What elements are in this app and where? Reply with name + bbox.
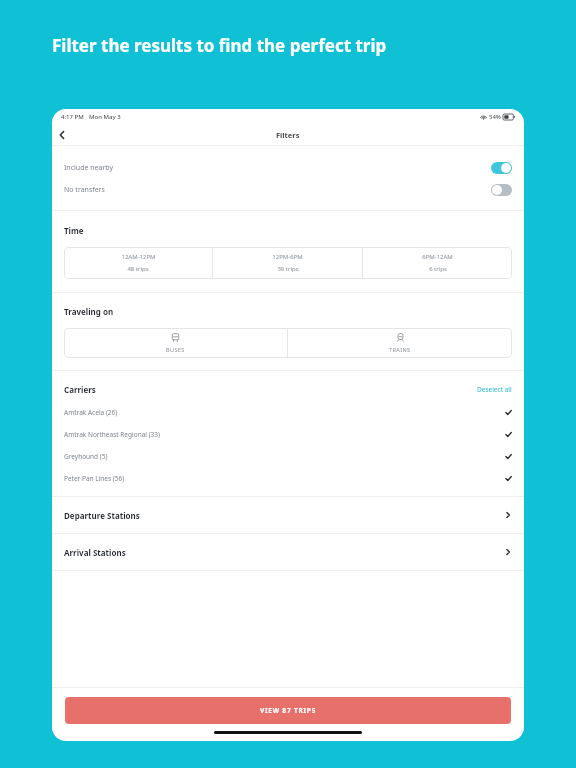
staticText: Time bbox=[64, 225, 512, 236]
button[interactable]: 12PM-6PM bbox=[213, 247, 362, 279]
staticText: Deselect all bbox=[477, 385, 512, 394]
button[interactable]: Arrival Stations bbox=[52, 534, 524, 570]
staticText: Filters bbox=[276, 130, 300, 140]
button[interactable]: 6PM-12AM bbox=[363, 247, 512, 279]
staticText: 48 trips bbox=[127, 265, 149, 273]
staticText: BUSES bbox=[166, 346, 185, 353]
staticText: VIEW 87 TRIPS bbox=[260, 706, 317, 715]
button[interactable]: TRAINS bbox=[288, 328, 512, 358]
staticText: No transfers bbox=[64, 185, 491, 195]
staticText: Arrival Stations bbox=[64, 547, 504, 558]
staticText: Mon May 3 bbox=[89, 113, 121, 121]
button[interactable]: Peter Pan Lines (56) bbox=[52, 467, 524, 489]
staticText: TRAINS bbox=[389, 346, 411, 353]
button[interactable]: BUSES bbox=[64, 328, 287, 358]
staticText: 4:17 PM bbox=[61, 113, 84, 121]
button[interactable]: No transfers bbox=[52, 179, 524, 201]
staticText: 6PM-12AM bbox=[422, 253, 453, 261]
staticText: Peter Pan Lines (56) bbox=[64, 474, 505, 483]
staticText: Greyhound (5) bbox=[64, 452, 505, 461]
staticText: Amtrak Northeast Regional (33) bbox=[64, 430, 505, 439]
staticText: Filter the results to find the perfect t… bbox=[52, 34, 387, 57]
staticText: Include nearby bbox=[64, 163, 491, 173]
staticText: Carriers bbox=[64, 384, 477, 395]
button[interactable]: Back bbox=[52, 125, 72, 145]
staticText: Traveling on bbox=[64, 306, 512, 317]
button[interactable]: Deselect all bbox=[477, 385, 512, 394]
staticText: Amtrak Acela (26) bbox=[64, 408, 505, 417]
staticText: 12PM-6PM bbox=[272, 253, 303, 261]
button[interactable]: Include nearby bbox=[52, 157, 524, 179]
button[interactable]: Departure Stations bbox=[52, 497, 524, 533]
staticText: 6 trips bbox=[429, 265, 447, 273]
button[interactable]: Amtrak Acela (26) bbox=[52, 401, 524, 423]
button[interactable]: Amtrak Northeast Regional (33) bbox=[52, 423, 524, 445]
staticText: 54% bbox=[489, 113, 501, 121]
staticText: 12AM-12PM bbox=[121, 253, 156, 261]
button[interactable]: 12AM-12PM bbox=[64, 247, 212, 279]
button[interactable]: VIEW 87 TRIPS bbox=[65, 697, 511, 724]
staticText: Departure Stations bbox=[64, 510, 504, 521]
button[interactable]: Greyhound (5) bbox=[52, 445, 524, 467]
staticText: 39 trips bbox=[277, 265, 299, 273]
